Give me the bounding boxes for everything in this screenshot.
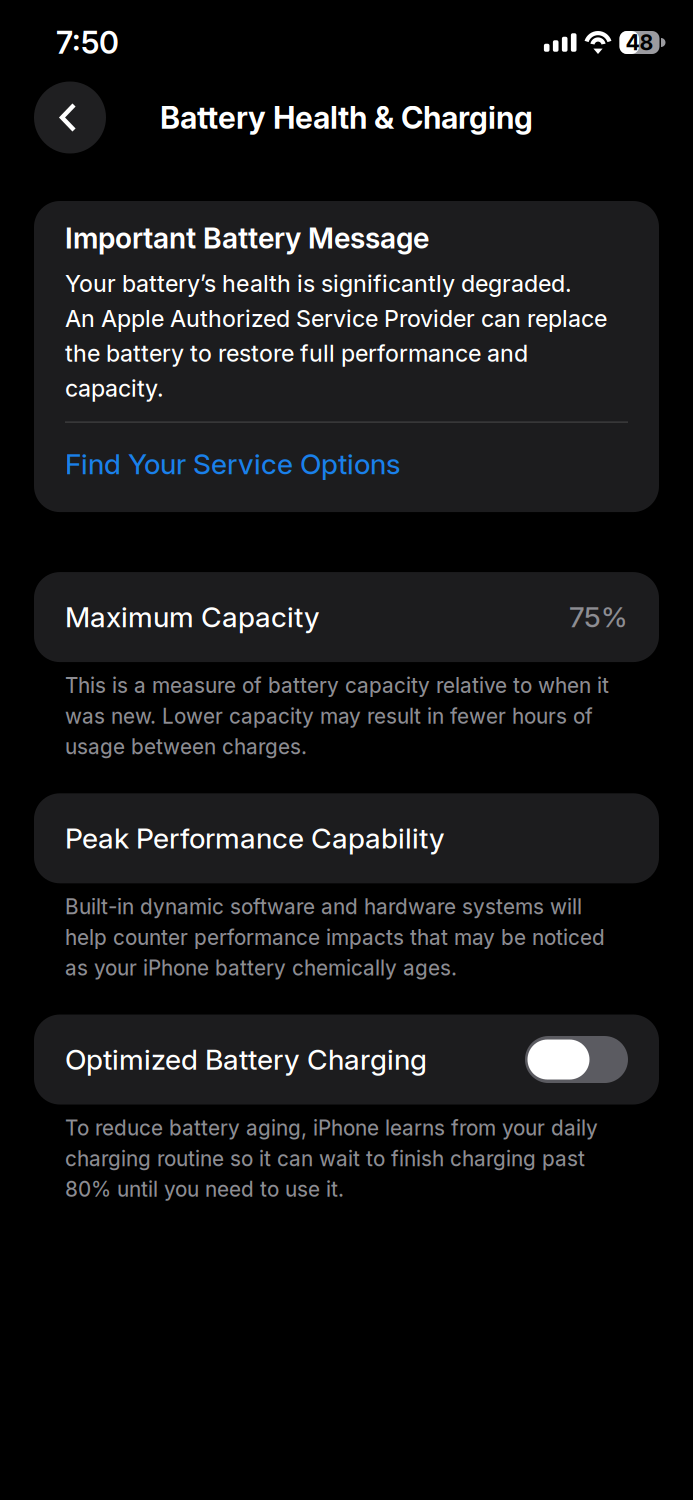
staticText: Find Your Service Options [65, 447, 401, 481]
button[interactable]: Optimized Battery Charging [525, 1036, 628, 1083]
staticText: To reduce battery aging, iPhone learns f… [65, 1115, 598, 1202]
staticText: Maximum Capacity [65, 600, 320, 634]
staticText: Battery Health & Charging [160, 99, 533, 136]
button[interactable]: Back [34, 81, 106, 153]
button[interactable]: Find Your Service Options [65, 447, 628, 481]
staticText: 7:50 [56, 24, 119, 61]
staticText: This is a measure of battery capacity re… [65, 673, 609, 759]
staticText: 48 [625, 30, 653, 55]
staticText: Built-in dynamic software and hardware s… [65, 894, 605, 980]
staticText: Important Battery Message [65, 221, 429, 255]
staticText: 75% [569, 600, 628, 634]
button[interactable]: Peak Performance Capability [0, 793, 693, 883]
staticText: Optimized Battery Charging [65, 1042, 427, 1077]
staticText: Your battery’s health is significantly d… [65, 269, 607, 402]
staticText: Peak Performance Capability [65, 821, 445, 855]
